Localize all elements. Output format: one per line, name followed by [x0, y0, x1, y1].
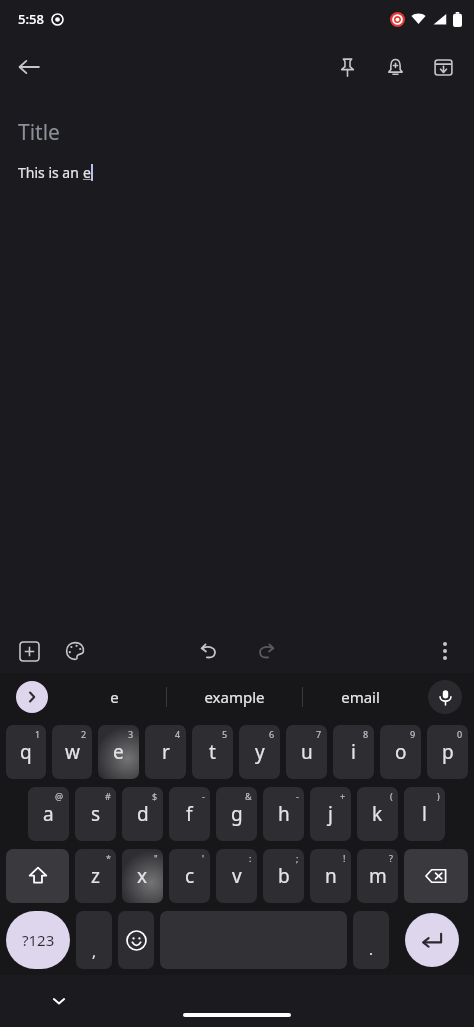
button[interactable]: a — [28, 787, 69, 841]
staticText: - — [296, 790, 299, 802]
staticText: i — [351, 739, 356, 765]
staticText: 8 — [363, 728, 369, 740]
staticText: a — [43, 801, 54, 827]
button[interactable]: k — [357, 787, 398, 841]
button[interactable]: , — [76, 911, 112, 969]
button[interactable]: w — [52, 725, 92, 779]
staticText: Title — [18, 118, 60, 147]
button[interactable]: z — [75, 849, 116, 903]
button[interactable]: Add — [10, 632, 48, 670]
staticText: * — [106, 852, 111, 864]
staticText: $ — [152, 790, 158, 802]
button[interactable]: u — [286, 725, 327, 779]
button[interactable]: p — [427, 725, 468, 779]
button[interactable]: b — [263, 849, 304, 903]
staticText: 5:58 — [18, 10, 44, 28]
staticText: email — [341, 687, 380, 707]
staticText: : — [249, 852, 252, 864]
staticText: d — [137, 801, 149, 827]
staticText: 9 — [410, 728, 416, 740]
button[interactable]: o — [380, 725, 421, 779]
button[interactable]: Add reminder — [372, 44, 418, 90]
staticText: ) — [437, 790, 440, 802]
button[interactable]: h — [263, 787, 304, 841]
staticText: u — [301, 739, 313, 765]
staticText: e — [113, 739, 124, 765]
staticText: - — [202, 790, 205, 802]
staticText: # — [105, 790, 111, 802]
button[interactable]: ?123 — [6, 911, 70, 969]
staticText: v — [232, 863, 242, 889]
button[interactable]: Redo — [247, 632, 285, 670]
button[interactable]: Back — [6, 44, 52, 90]
button[interactable]: m — [357, 849, 398, 903]
button[interactable]: Archive — [420, 44, 466, 90]
staticText: ?123 — [22, 930, 55, 950]
staticText: e — [83, 163, 91, 182]
button[interactable]: Change color — [56, 632, 94, 670]
staticText: 1 — [35, 728, 41, 740]
staticText: & — [245, 790, 252, 802]
button[interactable]: d — [122, 787, 163, 841]
button[interactable]: i — [333, 725, 374, 779]
button[interactable]: s — [75, 787, 116, 841]
button[interactable]: y — [239, 725, 280, 779]
button[interactable]: Expand suggestions — [16, 681, 48, 713]
staticText: 5 — [222, 728, 228, 740]
button[interactable]: l — [404, 787, 445, 841]
button[interactable]: Shift — [6, 849, 69, 903]
staticText: g — [231, 801, 243, 827]
staticText: ? — [389, 852, 393, 864]
staticText: 0 — [457, 728, 463, 740]
staticText: r — [162, 739, 170, 765]
staticText: l — [422, 801, 427, 827]
staticText: b — [278, 863, 290, 889]
staticText: y — [255, 739, 265, 765]
staticText: @ — [55, 790, 64, 802]
button[interactable]: . — [353, 911, 389, 969]
staticText: 3 — [128, 728, 134, 740]
button[interactable]: c — [169, 849, 210, 903]
button[interactable]: g — [216, 787, 257, 841]
button[interactable]: t — [192, 725, 233, 779]
staticText: z — [91, 863, 100, 889]
button[interactable]: r — [145, 725, 186, 779]
staticText: 7 — [316, 728, 322, 740]
button[interactable]: Undo — [189, 632, 227, 670]
staticText: ; — [296, 852, 299, 864]
button[interactable]: n — [310, 849, 351, 903]
staticText: n — [325, 863, 337, 889]
button[interactable]: f — [169, 787, 210, 841]
button[interactable]: Enter — [405, 913, 459, 967]
staticText: ! — [343, 852, 346, 864]
button[interactable]: Backspace — [404, 849, 468, 903]
button[interactable]: More options — [426, 632, 464, 670]
button[interactable]: x — [122, 849, 163, 903]
button[interactable]: Hide keyboard — [40, 982, 78, 1020]
staticText: " — [154, 852, 158, 864]
staticText: t — [209, 739, 216, 765]
staticText: c — [185, 863, 195, 889]
button[interactable]: Emoji — [118, 911, 154, 969]
button[interactable]: e — [98, 725, 139, 779]
staticText: example — [204, 687, 265, 707]
button[interactable]: v — [216, 849, 257, 903]
button[interactable]: j — [310, 787, 351, 841]
button[interactable]: Voice input — [428, 680, 462, 714]
staticText: , — [92, 941, 97, 961]
button[interactable]: Pin — [324, 44, 370, 90]
staticText: m — [369, 863, 387, 889]
button[interactable]: e — [62, 673, 166, 721]
staticText: 6 — [269, 728, 275, 740]
button[interactable]: q — [6, 725, 46, 779]
button[interactable]: email — [303, 673, 418, 721]
button[interactable]: example — [167, 673, 302, 721]
staticText: w — [65, 739, 80, 765]
staticText: This is an — [18, 163, 83, 182]
staticText: p — [442, 739, 454, 765]
staticText: + — [340, 790, 346, 802]
staticText: j — [328, 801, 333, 827]
staticText: 4 — [175, 728, 181, 740]
staticText: o — [395, 739, 407, 765]
